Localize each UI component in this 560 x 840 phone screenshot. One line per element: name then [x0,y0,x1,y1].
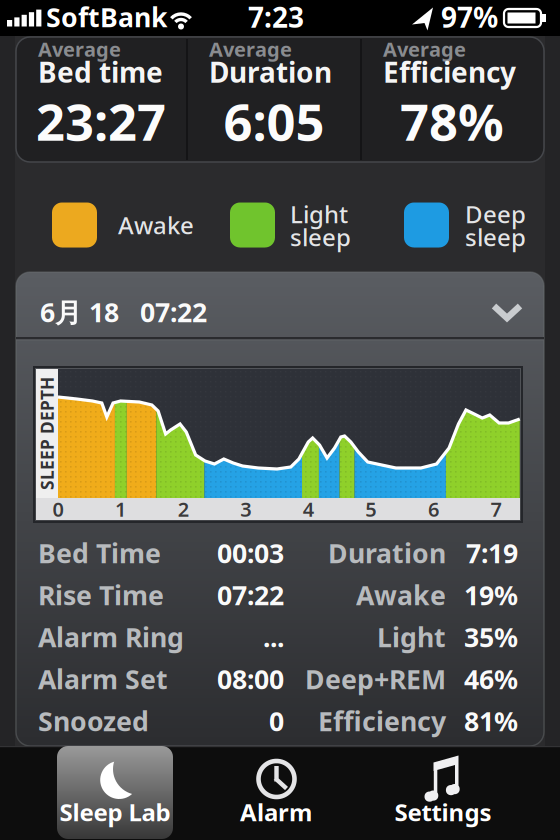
staticText: Bed time [38,53,163,91]
staticText: 19% [464,577,518,613]
staticText: Deep [465,198,526,230]
staticText: Average [209,36,292,62]
staticText: Bed Time [38,535,161,571]
staticText: 0 [52,496,63,522]
button[interactable]: Sleep Lab [57,746,173,839]
staticText: 7:19 [466,535,518,571]
staticText: 35% [464,619,518,655]
staticText: SLEEP DEPTH [0,422,103,445]
staticText: SoftBank [46,0,168,35]
staticText: Duration [328,535,446,571]
staticText: 7 [490,496,501,522]
staticText: 81% [464,703,518,739]
staticText: Average [383,36,466,62]
staticText: Sleep Lab [59,796,170,828]
staticText: Alarm Set [38,661,168,697]
staticText: 6:05 [223,87,324,155]
staticText: Light [377,619,446,655]
staticText: 3 [240,496,251,522]
staticText: Alarm Ring [38,619,184,655]
staticText: ... [263,619,284,655]
staticText: sleep [290,221,351,253]
staticText: Light [290,198,348,230]
staticText: 07:22 [217,577,284,613]
staticText: 07:22 [140,294,207,330]
staticText: Efficiency [383,53,516,91]
staticText: Awake [118,209,194,241]
staticText: sleep [465,221,526,253]
staticText: Rise Time [38,577,164,613]
button[interactable]: Settings [383,746,503,839]
staticText: Duration [209,53,332,91]
button[interactable]: 6月 18 [16,272,544,338]
staticText: 1 [115,496,126,522]
staticText: Snoozed [38,703,149,739]
staticText: 78% [400,87,504,155]
staticText: Deep+REM [305,661,446,697]
staticText: 6 [428,496,439,522]
staticText: 4 [303,496,314,522]
staticText: Average [38,36,121,62]
staticText: Efficiency [318,703,446,739]
staticText: 6月 18 [40,294,119,330]
staticText: 23:27 [36,87,166,155]
staticText: 7:23 [248,0,304,36]
staticText: 00:03 [217,535,284,571]
staticText: Settings [394,796,491,828]
staticText: 5 [365,496,376,522]
staticText: 08:00 [217,661,284,697]
staticText: 2 [178,496,189,522]
staticText: 97% [441,0,498,36]
staticText: Alarm [240,796,312,828]
staticText: 46% [464,661,518,697]
staticText: Awake [356,577,446,613]
button[interactable]: Alarm [216,746,336,839]
staticText: 0 [269,703,284,739]
